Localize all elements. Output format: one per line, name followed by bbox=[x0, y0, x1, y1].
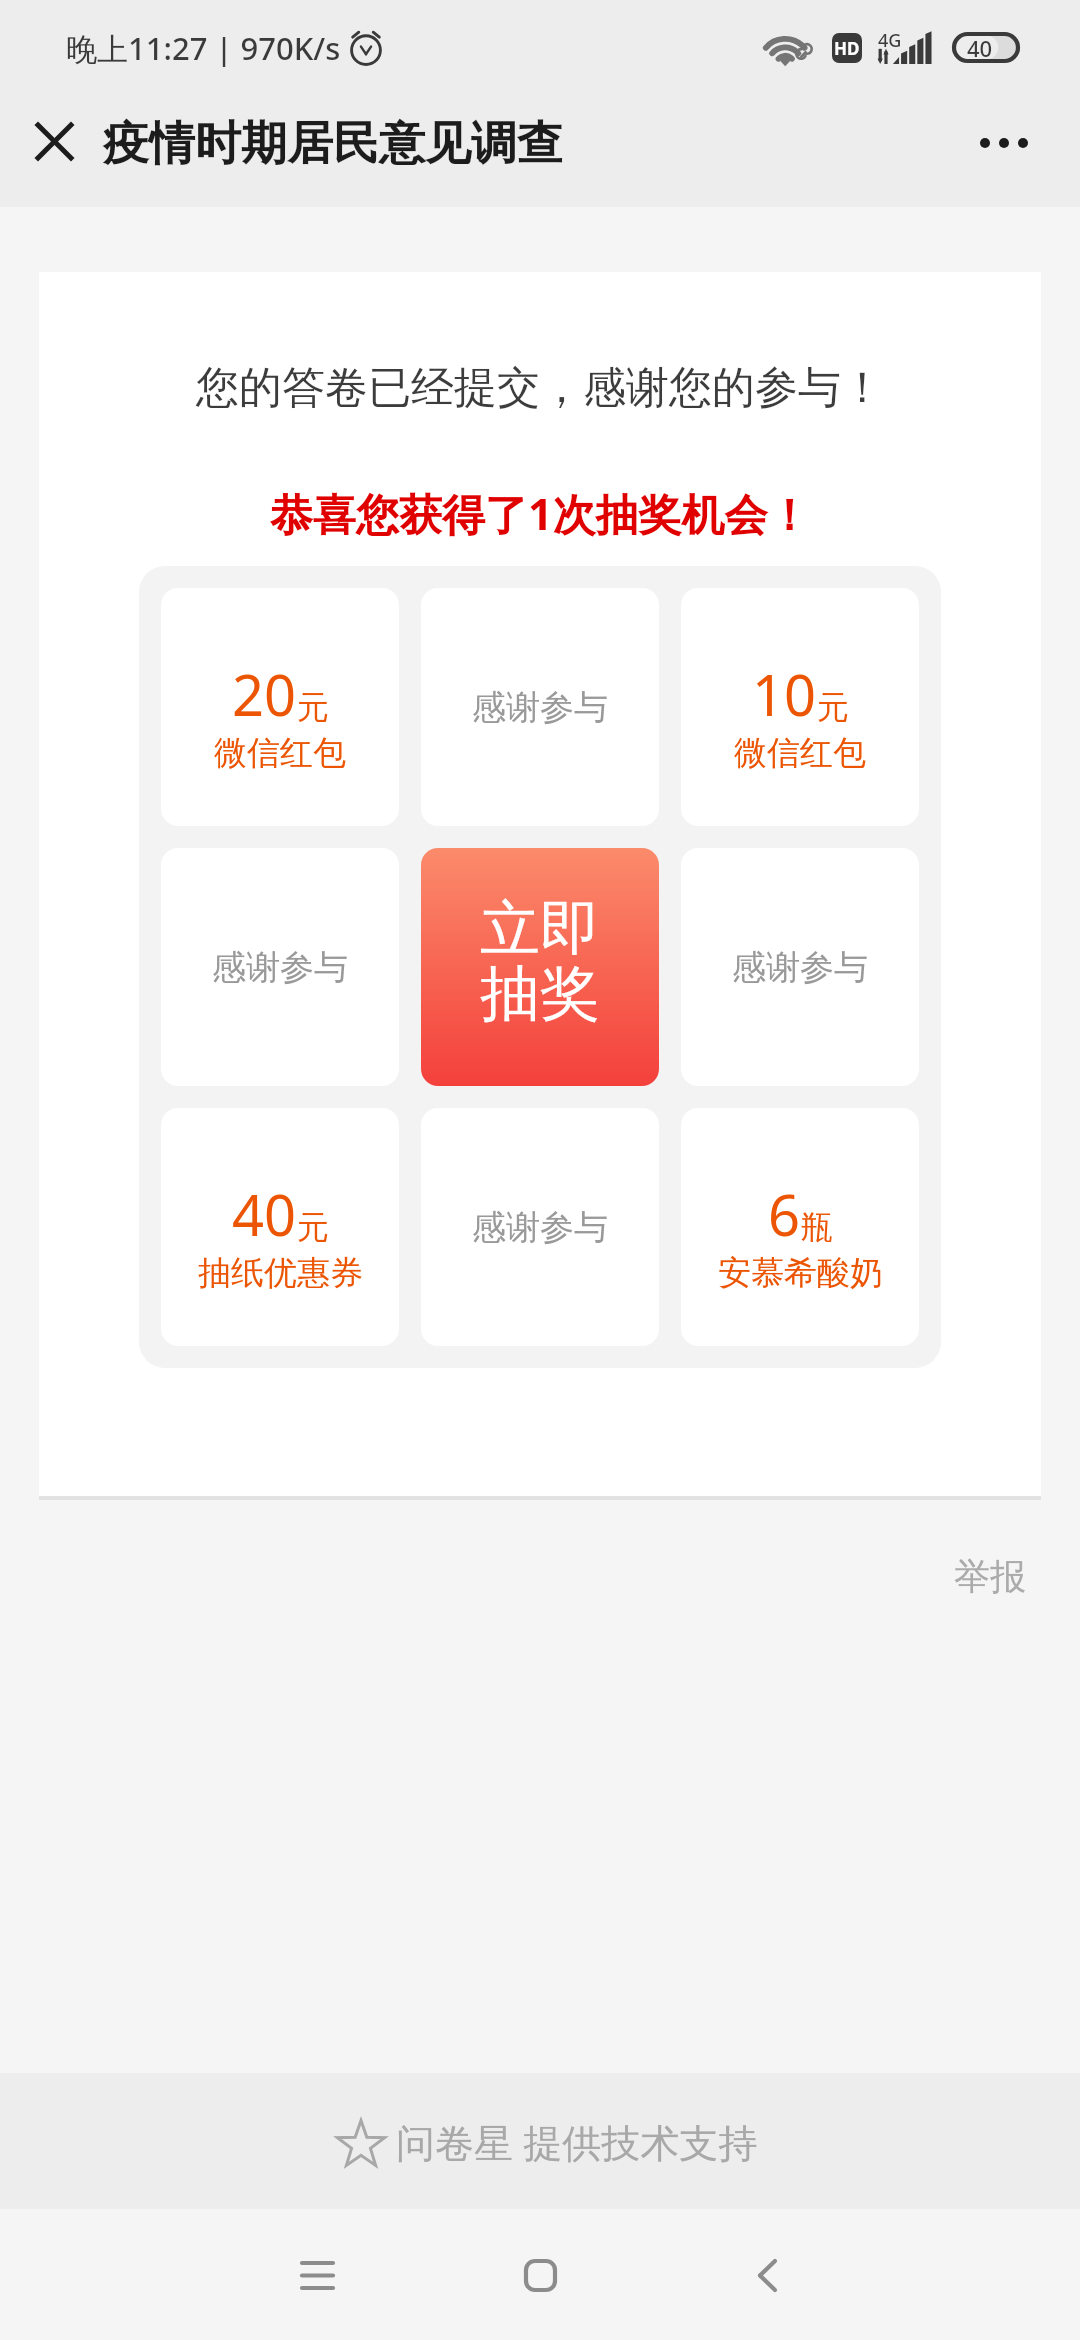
staticText: 瓶 bbox=[801, 1207, 833, 1247]
button[interactable]: Back bbox=[693, 2225, 833, 2325]
staticText: 微信红包 bbox=[214, 732, 346, 774]
staticText: 微信红包 bbox=[734, 732, 866, 774]
staticText: 感谢参与 bbox=[472, 1206, 608, 1249]
staticText: 10 bbox=[752, 656, 817, 732]
button[interactable]: 感谢参与 bbox=[421, 1108, 659, 1346]
staticText: 问卷星 提供技术支持 bbox=[396, 2115, 758, 2168]
button[interactable]: 40 bbox=[161, 1108, 399, 1346]
staticText: 恭喜您获得了1次抽奖机会！ bbox=[270, 484, 811, 543]
button[interactable]: 6 bbox=[681, 1108, 919, 1346]
staticText: HD bbox=[834, 37, 860, 60]
staticText: 您的答卷已经提交，感谢您的参与！ bbox=[196, 361, 884, 415]
button[interactable]: 举报 bbox=[900, 1544, 1080, 1609]
button[interactable]: More options bbox=[954, 95, 1080, 187]
button[interactable]: 问卷星 提供技术支持 bbox=[334, 2114, 758, 2168]
staticText: 元 bbox=[297, 1207, 329, 1247]
staticText: 疫情时期居民意见调查 bbox=[103, 115, 563, 173]
button[interactable]: 立即 抽奖 bbox=[421, 848, 659, 1086]
staticText: 元 bbox=[817, 687, 849, 727]
button[interactable]: 10 bbox=[681, 588, 919, 826]
staticText: 感谢参与 bbox=[212, 946, 348, 989]
button[interactable]: 20 bbox=[161, 588, 399, 826]
button[interactable]: 感谢参与 bbox=[161, 848, 399, 1086]
staticText: 举报 bbox=[954, 1554, 1026, 1599]
staticText: 抽纸优惠券 bbox=[198, 1252, 363, 1294]
staticText: 4G bbox=[878, 28, 902, 53]
staticText: 晚上11:27 | 970K/s bbox=[66, 27, 341, 69]
staticText: 40 bbox=[232, 1176, 297, 1252]
button[interactable]: Recent apps bbox=[247, 2225, 387, 2325]
staticText: 40 bbox=[967, 33, 993, 63]
staticText: 元 bbox=[297, 687, 329, 727]
staticText: 感谢参与 bbox=[732, 946, 868, 989]
staticText: 立即 抽奖 bbox=[480, 891, 600, 1032]
staticText: 20 bbox=[232, 656, 297, 732]
button[interactable]: 感谢参与 bbox=[681, 848, 919, 1086]
button[interactable]: Close bbox=[0, 95, 103, 187]
button[interactable]: 感谢参与 bbox=[421, 588, 659, 826]
staticText: 感谢参与 bbox=[472, 686, 608, 729]
button[interactable]: Home bbox=[470, 2225, 610, 2325]
staticText: 6 bbox=[768, 1176, 801, 1252]
staticText: 安慕希酸奶 bbox=[718, 1252, 883, 1294]
